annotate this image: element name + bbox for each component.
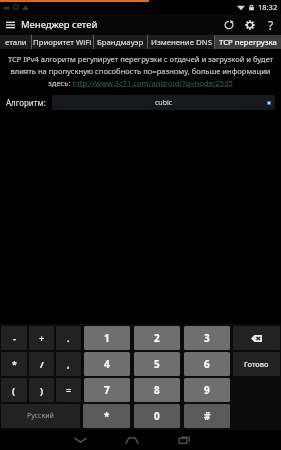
- staticText: 8: [154, 383, 160, 397]
- button[interactable]: 0: [134, 404, 180, 428]
- button[interactable]: 4: [84, 352, 130, 376]
- button[interactable]: 2: [134, 326, 180, 350]
- staticText: ?: [268, 17, 274, 33]
- button[interactable]: TCP перегрузка: [215, 35, 281, 49]
- staticText: етали: [5, 37, 27, 48]
- button[interactable]: ): [29, 378, 54, 402]
- staticText: 1: [104, 331, 110, 345]
- button[interactable]: /: [29, 352, 54, 376]
- button[interactable]: Hide keyboard: [65, 430, 95, 450]
- staticText: (: [12, 384, 16, 396]
- staticText: Брандмауэр: [97, 37, 144, 48]
- button[interactable]: 7: [84, 378, 130, 402]
- staticText: 0: [154, 409, 160, 423]
- staticText: 2: [154, 331, 160, 345]
- button[interactable]: (: [1, 378, 27, 402]
- button[interactable]: Refresh: [218, 14, 239, 35]
- button[interactable]: 3: [184, 326, 230, 350]
- staticText: /: [40, 358, 44, 370]
- button[interactable]: Приоритет WiFi: [32, 35, 93, 49]
- staticText: 5: [154, 357, 160, 371]
- staticText: Приоритет WiFi: [33, 37, 92, 48]
- button[interactable]: Recents: [169, 430, 199, 450]
- button[interactable]: Home: [117, 430, 147, 450]
- button[interactable]: #: [184, 404, 230, 428]
- button[interactable]: *: [83, 404, 130, 428]
- button[interactable]: 6: [184, 352, 230, 376]
- button[interactable]: -: [1, 326, 27, 350]
- button[interactable]: Settings: [239, 14, 260, 35]
- staticText: *: [104, 409, 110, 423]
- staticText: Алгоритм:: [6, 97, 46, 108]
- staticText: Менеджер сетей: [21, 18, 98, 31]
- button[interactable]: Изменение DNS: [148, 35, 214, 49]
- staticText: Русский: [27, 411, 54, 421]
- staticText: +: [39, 332, 45, 344]
- button[interactable]: cubic: [52, 95, 275, 110]
- staticText: 9: [204, 383, 210, 397]
- staticText: Готово: [244, 359, 269, 369]
- button[interactable]: 5: [134, 352, 180, 376]
- staticText: .: [67, 332, 70, 344]
- button[interactable]: =: [56, 378, 81, 402]
- staticText: #: [204, 409, 211, 423]
- staticText: TCP IPv4 алгоритм регулирует перегрузки …: [6, 54, 275, 88]
- button[interactable]: етали: [0, 35, 31, 49]
- button[interactable]: +: [29, 326, 54, 350]
- staticText: 4: [104, 357, 110, 371]
- button[interactable]: Backspace: [233, 326, 280, 350]
- button[interactable]: *: [1, 352, 27, 376]
- staticText: Изменение DNS: [151, 37, 212, 48]
- button[interactable]: Брандмауэр: [94, 35, 147, 49]
- staticText: -: [13, 332, 16, 344]
- button[interactable]: 1: [84, 326, 130, 350]
- button[interactable]: Help: [260, 14, 281, 35]
- button[interactable]: .: [56, 326, 81, 350]
- staticText: =: [66, 384, 72, 396]
- button[interactable]: Русский: [1, 404, 80, 428]
- button[interactable]: ,: [56, 352, 81, 376]
- button[interactable]: 8: [134, 378, 180, 402]
- button[interactable]: 9: [184, 378, 230, 402]
- button[interactable]: Готово: [233, 352, 280, 376]
- staticText: 7: [104, 383, 110, 397]
- staticText: ): [40, 384, 44, 396]
- staticText: TCP перегрузка: [219, 37, 277, 48]
- button[interactable]: Menu: [0, 14, 21, 35]
- staticText: 18:32: [258, 2, 278, 12]
- staticText: 3: [204, 331, 210, 345]
- staticText: *: [12, 358, 17, 370]
- staticText: cubic: [155, 98, 173, 108]
- staticText: ,: [67, 358, 70, 370]
- staticText: 6: [204, 357, 210, 371]
